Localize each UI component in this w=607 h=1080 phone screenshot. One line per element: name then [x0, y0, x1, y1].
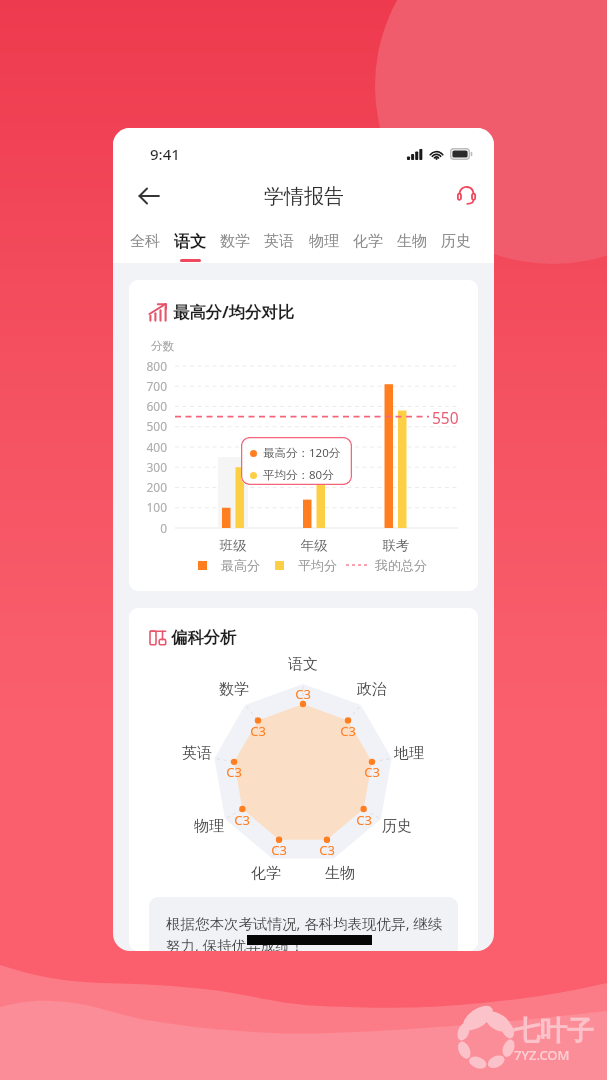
staticText: 地理 — [384, 744, 434, 763]
staticText: C3 — [344, 811, 384, 829]
staticText: C3 — [307, 841, 347, 859]
staticText: 9:41 — [150, 144, 180, 164]
staticText: 我的总分 — [375, 557, 427, 573]
staticText: 100 — [133, 499, 167, 515]
staticText: 550 — [432, 407, 459, 428]
staticText: 语文 — [278, 655, 328, 674]
button[interactable]: Customer service — [449, 177, 483, 211]
staticText: C3 — [283, 685, 323, 703]
staticText: 分数 — [151, 339, 174, 353]
staticText: C3 — [259, 841, 299, 859]
staticText: 0 — [133, 520, 167, 536]
staticText: 英语 — [172, 744, 222, 763]
staticText: C3 — [214, 763, 254, 781]
button[interactable]: 语文 — [172, 232, 208, 262]
staticText: 最高分/均分对比 — [173, 301, 294, 323]
staticText: 语文 — [174, 232, 206, 252]
staticText: 400 — [133, 439, 167, 455]
staticText: 数学 — [209, 680, 259, 699]
staticText: 7YZ.COM — [514, 1046, 570, 1064]
staticText: 历史 — [372, 817, 422, 836]
staticText: 化学 — [241, 864, 291, 883]
staticText: 历史 — [441, 232, 471, 251]
staticText: 物理 — [309, 232, 339, 251]
staticText: 根据您本次考试情况, 各科均表现优异, 继续努力, 保持优异成绩！ — [166, 913, 451, 951]
staticText: 全科 — [130, 232, 160, 251]
staticText: 物理 — [184, 817, 234, 836]
staticText: 300 — [133, 459, 167, 475]
staticText: 500 — [133, 418, 167, 434]
staticText: 生物 — [397, 232, 427, 251]
staticText: 政治 — [347, 680, 397, 699]
staticText: 偏科分析 — [171, 627, 237, 648]
staticText: 数学 — [220, 232, 250, 251]
staticText: C3 — [238, 722, 278, 740]
staticText: 年级 — [284, 537, 344, 554]
staticText: 800 — [133, 358, 167, 374]
staticText: 最高分：120分 — [263, 445, 341, 461]
staticText: C3 — [352, 763, 392, 781]
staticText: C3 — [328, 722, 368, 740]
staticText: 最高分 — [221, 557, 260, 573]
staticText: 平均分 — [298, 557, 337, 573]
staticText: 200 — [133, 479, 167, 495]
staticText: 班级 — [203, 537, 263, 554]
button[interactable]: 英语 — [262, 232, 296, 261]
staticText: 七叶子 — [513, 1014, 594, 1048]
button[interactable]: 化学 — [351, 232, 385, 261]
staticText: C3 — [222, 811, 262, 829]
button[interactable]: 物理 — [307, 232, 341, 261]
button[interactable]: 历史 — [439, 232, 473, 261]
staticText: 生物 — [315, 864, 365, 883]
staticText: 化学 — [353, 232, 383, 251]
staticText: 联考 — [366, 537, 426, 554]
staticText: 平均分：80分 — [263, 467, 334, 483]
staticText: 英语 — [264, 232, 294, 251]
button[interactable]: 全科 — [128, 232, 162, 261]
staticText: 700 — [133, 378, 167, 394]
staticText: 学情报告 — [264, 184, 344, 209]
button[interactable]: 数学 — [218, 232, 252, 261]
button[interactable]: 生物 — [395, 232, 429, 261]
button[interactable]: Back — [131, 178, 167, 214]
staticText: 600 — [133, 398, 167, 414]
